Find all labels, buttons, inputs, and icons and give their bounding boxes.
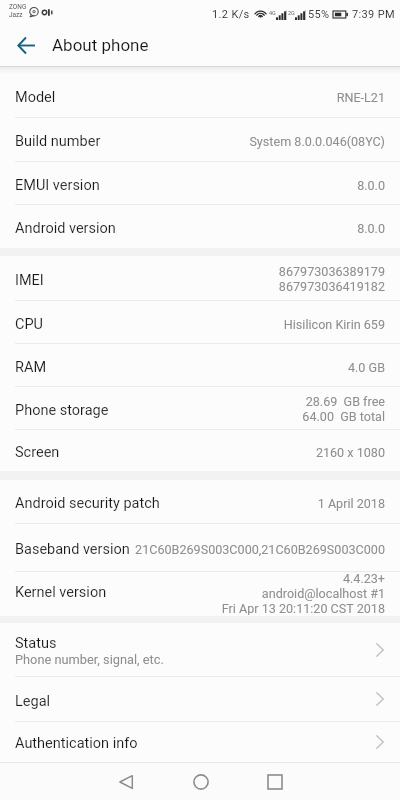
button[interactable]: Navigate up bbox=[0, 26, 51, 66]
staticText: 2160 x 1080 bbox=[315, 445, 385, 460]
staticText: 28.69 GB free 64.00 GB total bbox=[302, 394, 385, 424]
staticText: 2G bbox=[288, 10, 295, 16]
button[interactable]: Phone storage bbox=[0, 387, 400, 429]
staticText: 867973036389179 867973036419182 bbox=[278, 264, 385, 294]
staticText: Android security patch bbox=[15, 495, 160, 512]
staticText: Phone number, signal, etc. bbox=[15, 652, 164, 667]
button[interactable]: CPU bbox=[0, 301, 400, 343]
button[interactable]: Build number bbox=[0, 118, 400, 161]
staticText: Jazz bbox=[9, 11, 23, 19]
staticText: Build number bbox=[15, 133, 101, 150]
button[interactable]: Home bbox=[178, 763, 223, 800]
staticText: EMUI version bbox=[15, 177, 100, 194]
button[interactable]: Authentication info bbox=[0, 722, 400, 761]
staticText: 7:39 PM bbox=[352, 8, 395, 21]
button[interactable]: Back bbox=[103, 763, 148, 800]
staticText: 55% bbox=[308, 8, 330, 21]
button[interactable]: IMEI bbox=[0, 256, 400, 300]
staticText: CPU bbox=[15, 316, 43, 333]
staticText: 21C60B269S003C000,21C60B269S003C000 bbox=[135, 542, 385, 557]
staticText: RAM bbox=[15, 359, 47, 376]
staticText: 8.0.0 bbox=[357, 221, 385, 236]
staticText: 1 April 2018 bbox=[317, 496, 385, 511]
button[interactable]: Android security patch bbox=[0, 480, 400, 523]
staticText: Kernel version bbox=[15, 584, 107, 601]
staticText: 4.0 GB bbox=[347, 360, 385, 375]
staticText: Status bbox=[15, 635, 57, 652]
staticText: Baseband version bbox=[15, 541, 130, 558]
button[interactable]: Screen bbox=[0, 430, 400, 471]
button[interactable]: Android version bbox=[0, 205, 400, 248]
staticText: Android version bbox=[15, 220, 116, 237]
button[interactable]: Legal bbox=[0, 677, 400, 721]
staticText: 4G bbox=[269, 10, 276, 16]
staticText: 8.0.0 bbox=[357, 178, 385, 193]
button[interactable]: Recent apps bbox=[252, 763, 297, 800]
staticText: IMEI bbox=[15, 272, 44, 289]
staticText: 4.4.23+ android@localhost #1 Fri Apr 13 … bbox=[221, 571, 385, 615]
button[interactable]: Model bbox=[0, 74, 400, 117]
staticText: Legal bbox=[15, 693, 51, 710]
button[interactable]: Status bbox=[0, 623, 400, 676]
staticText: System 8.0.0.046(08YC) bbox=[249, 134, 385, 149]
staticText: Authentication info bbox=[15, 735, 138, 752]
staticText: Phone storage bbox=[15, 402, 109, 419]
staticText: 1.2 K/s bbox=[212, 8, 250, 21]
button[interactable]: Baseband version bbox=[0, 524, 400, 571]
staticText: RNE-L21 bbox=[336, 90, 385, 105]
staticText: Hisilicon Kirin 659 bbox=[283, 317, 385, 332]
staticText: Model bbox=[15, 89, 56, 106]
button[interactable]: RAM bbox=[0, 344, 400, 386]
button[interactable]: EMUI version bbox=[0, 162, 400, 204]
staticText: Screen bbox=[15, 444, 60, 461]
staticText: ZONG bbox=[9, 3, 27, 11]
button[interactable]: Kernel version bbox=[0, 572, 400, 616]
staticText: About phone bbox=[52, 35, 149, 55]
